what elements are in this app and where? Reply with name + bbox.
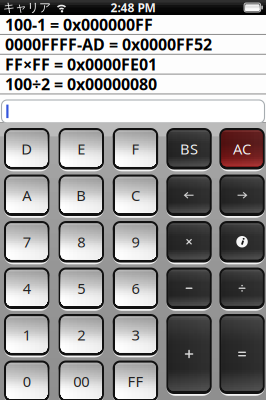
staticText: 6 [131, 278, 139, 298]
staticText: AC [233, 139, 251, 158]
button[interactable]: 00 [58, 360, 104, 400]
staticText: 5 [77, 278, 85, 298]
staticText: 7 [23, 232, 31, 251]
button[interactable]: Move cursor left [166, 174, 212, 216]
button[interactable]: Info [219, 221, 265, 262]
button[interactable]: C [113, 174, 158, 216]
staticText: F [131, 139, 139, 158]
button[interactable]: 5 [58, 267, 104, 309]
staticText: D [21, 139, 32, 158]
button[interactable]: Multiply [166, 221, 212, 262]
button[interactable]: 1 [4, 314, 49, 355]
button[interactable]: 2 [58, 314, 104, 355]
staticText: 9 [131, 232, 139, 251]
button[interactable]: AC [219, 128, 265, 169]
button[interactable]: F [113, 128, 158, 169]
button[interactable]: 4 [4, 267, 49, 309]
staticText: 2:48 PM [110, 0, 155, 15]
staticText: FF×FF = 0x0000FE01 [5, 54, 157, 75]
staticText: 1 [23, 325, 31, 344]
button[interactable]: D [4, 128, 49, 169]
button[interactable]: B [58, 174, 104, 216]
button[interactable]: Move cursor right [219, 174, 265, 216]
staticText: 0 [23, 371, 31, 391]
staticText: 3 [131, 325, 139, 344]
staticText: BS [180, 139, 198, 158]
button[interactable]: Add [166, 314, 212, 394]
staticText: キャリア [3, 0, 51, 15]
staticText: 2 [77, 325, 85, 344]
button[interactable]: Subtract [166, 267, 212, 309]
button[interactable]: BS [166, 128, 212, 169]
button[interactable]: 3 [113, 314, 158, 355]
button[interactable]: 0 [4, 360, 49, 400]
button[interactable]: 7 [4, 221, 49, 262]
button[interactable]: 6 [113, 267, 158, 309]
staticText: 0000FFFF-AD = 0x0000FF52 [5, 34, 212, 55]
staticText: 100÷2 = 0x00000080 [5, 73, 157, 95]
button[interactable]: 9 [113, 221, 158, 262]
staticText: B [76, 185, 86, 205]
staticText: E [77, 139, 85, 158]
button[interactable]: Divide [219, 267, 265, 309]
button[interactable]: FF [113, 360, 158, 400]
staticText: A [22, 185, 31, 205]
staticText: C [131, 185, 140, 205]
button[interactable]: A [4, 174, 49, 216]
staticText: 00 [73, 371, 89, 391]
staticText: FF [127, 371, 143, 391]
staticText: 4 [23, 278, 31, 298]
button[interactable]: E [58, 128, 104, 169]
button[interactable]: Equals [219, 314, 265, 394]
staticText: 100-1 = 0x000000FF [5, 14, 153, 35]
staticText: 8 [77, 232, 85, 251]
button[interactable]: 8 [58, 221, 104, 262]
